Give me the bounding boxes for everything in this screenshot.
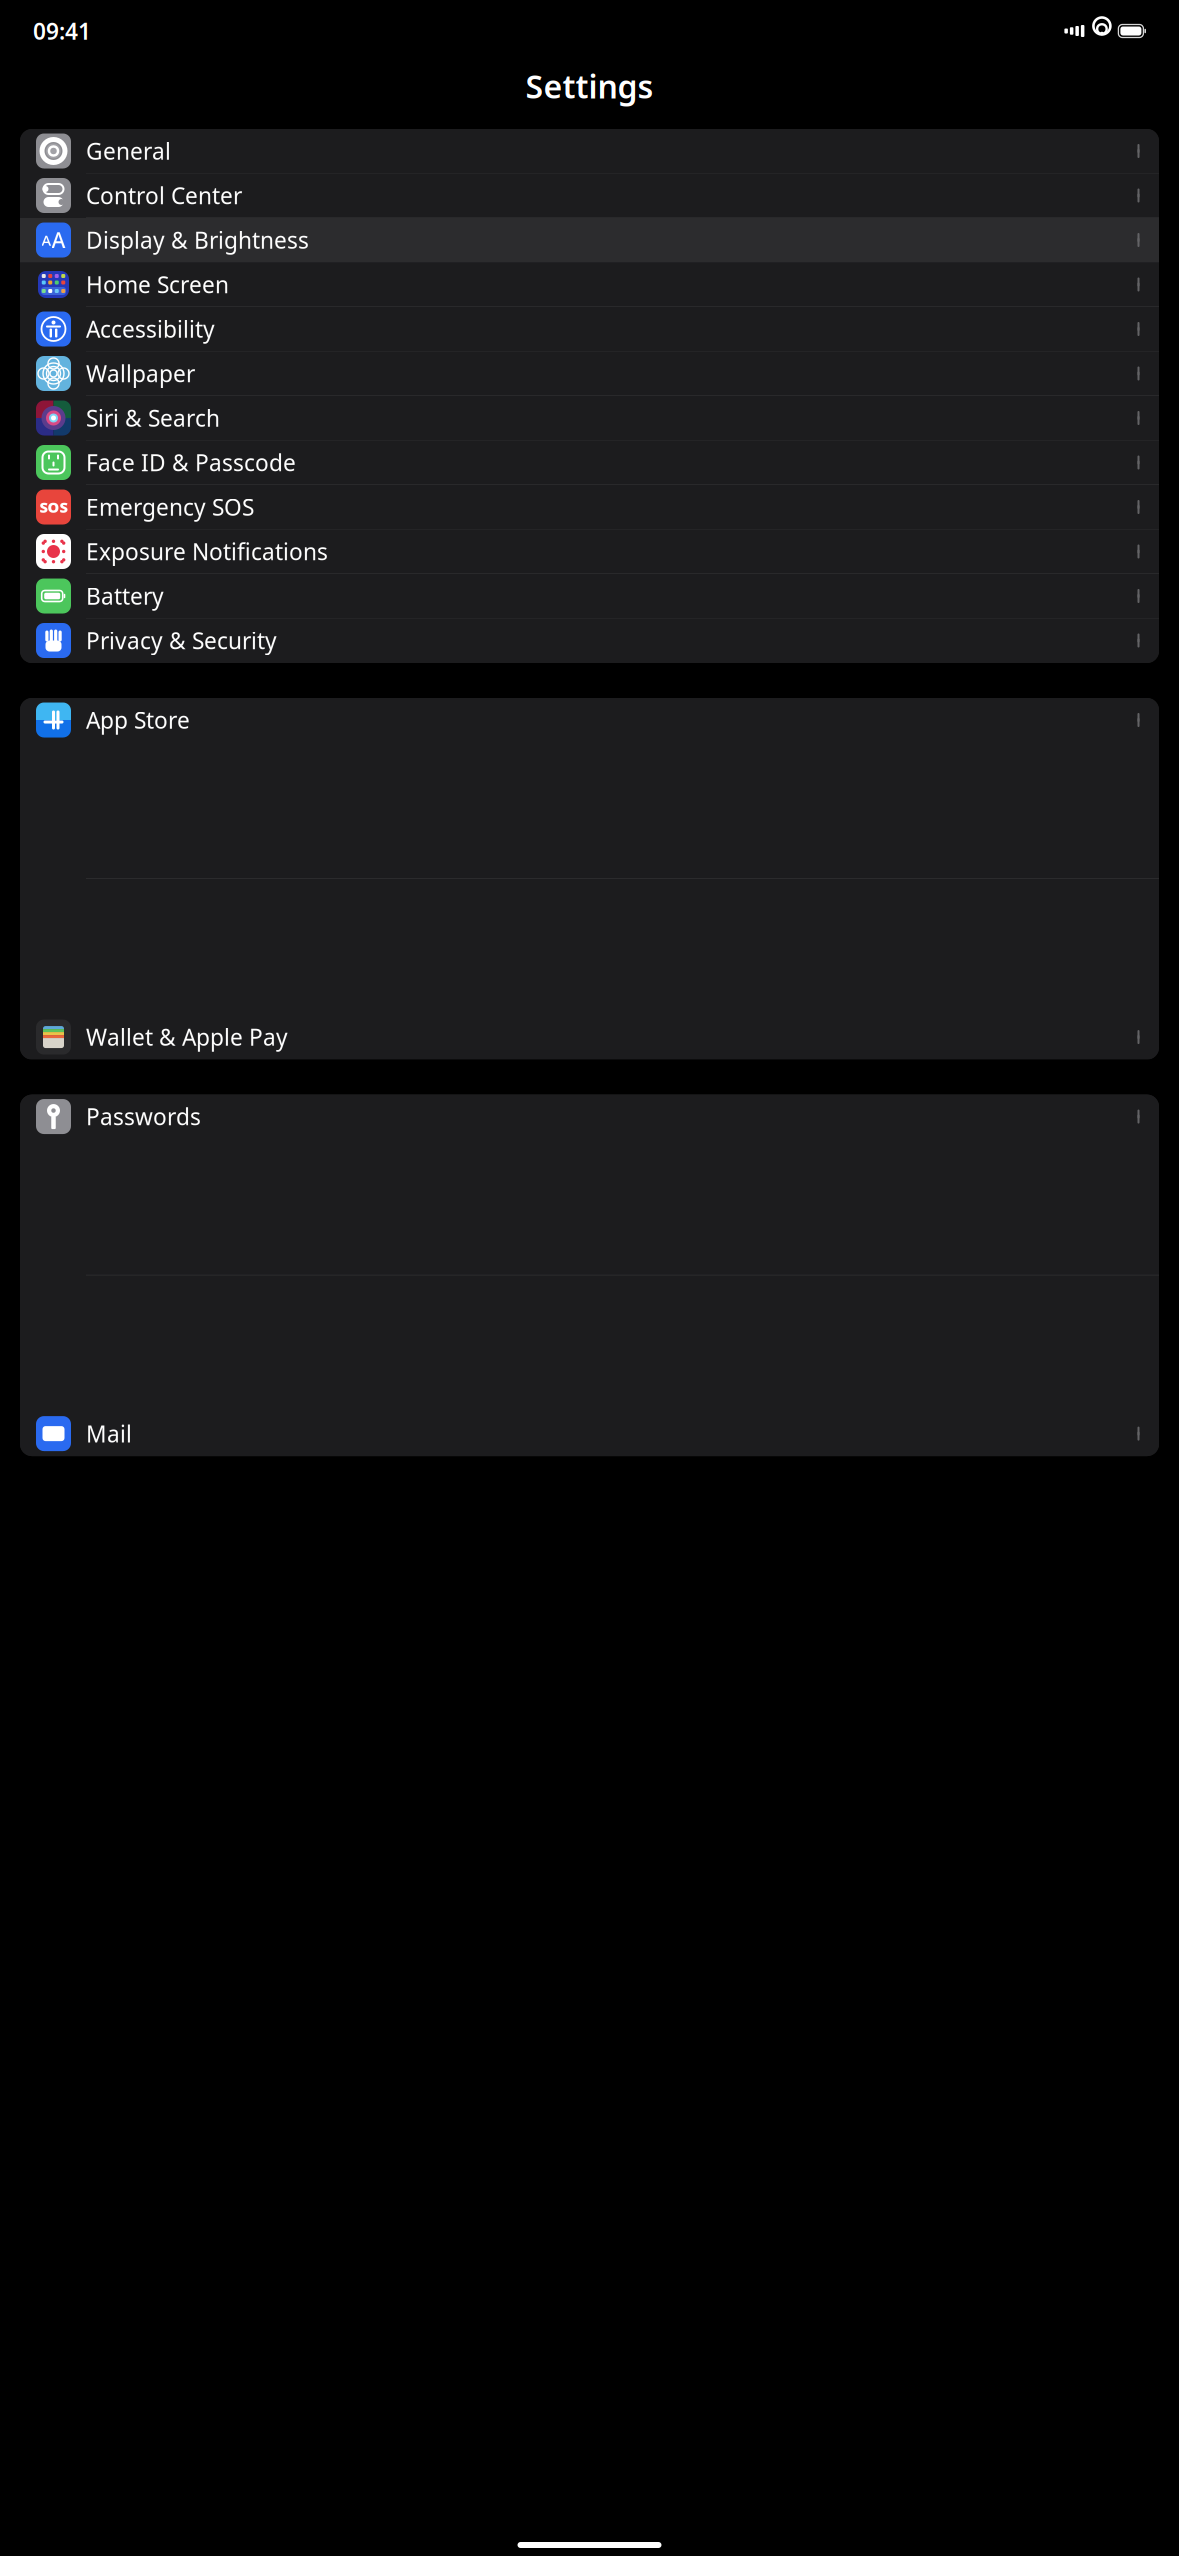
staticText: Emergency SOS: [86, 492, 254, 522]
staticText: Siri & Search: [86, 403, 220, 433]
staticText: Accessibility: [86, 314, 215, 344]
button[interactable]: Accessibility: [20, 307, 1159, 351]
staticText: Passwords: [86, 1101, 201, 1132]
staticText: Battery: [86, 581, 164, 611]
button[interactable]: Privacy & Security: [20, 618, 1159, 663]
button[interactable]: Wallpaper: [20, 351, 1159, 396]
button[interactable]: Control Center: [20, 173, 1159, 218]
button[interactable]: A: [20, 218, 1159, 262]
staticText: 09:41: [33, 16, 91, 46]
staticText: Privacy & Security: [86, 625, 277, 655]
button[interactable]: Battery: [20, 574, 1159, 618]
staticText: Wallet & Apple Pay: [86, 1022, 288, 1052]
button[interactable]: Exposure Notifications: [20, 529, 1159, 574]
staticText: Mail: [86, 1419, 132, 1449]
staticText: A: [51, 226, 65, 254]
staticText: App Store: [86, 705, 190, 735]
staticText: Settings: [525, 65, 653, 107]
button[interactable]: General: [20, 129, 1159, 173]
button[interactable]: SOS: [20, 485, 1159, 529]
button[interactable]: Passwords: [20, 1095, 1159, 1412]
button[interactable]: Siri & Search: [20, 396, 1159, 440]
staticText: General: [86, 136, 171, 166]
button[interactable]: Face ID & Passcode: [20, 440, 1159, 485]
button[interactable]: Wallet & Apple Pay: [20, 1015, 1159, 1060]
staticText: SOS: [39, 497, 67, 517]
staticText: Home Screen: [86, 269, 229, 299]
staticText: A: [41, 230, 51, 250]
staticText: Exposure Notifications: [86, 536, 328, 566]
button[interactable]: App Store: [20, 698, 1159, 1015]
staticText: Display & Brightness: [86, 225, 309, 255]
button[interactable]: Mail: [20, 1412, 1159, 1456]
staticText: Control Center: [86, 180, 242, 210]
button[interactable]: Home Screen: [20, 262, 1159, 307]
staticText: Face ID & Passcode: [86, 447, 296, 477]
staticText: Wallpaper: [86, 358, 195, 388]
